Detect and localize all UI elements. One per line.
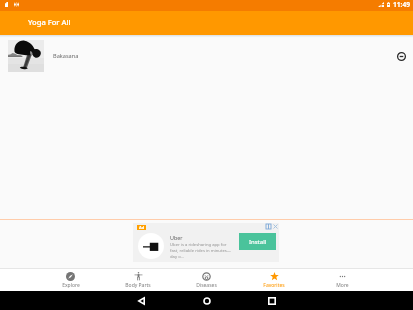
staticText: Favorites [263,282,285,289]
button[interactable]: Back [131,291,152,310]
staticText: Uber is a ridesharing app for fast, reli… [170,242,231,260]
button[interactable]: Remove from favourites [392,47,410,65]
button[interactable]: Home [196,291,217,310]
button[interactable]: Favorites [240,269,308,291]
staticText: Yoga For All [28,17,71,27]
staticText: Uber [170,234,183,241]
staticText: 11:49 [393,0,410,9]
button[interactable]: Install [239,233,276,250]
button[interactable]: Recent apps [261,291,282,310]
staticText: Explore [62,282,80,289]
staticText: More [336,282,349,289]
other: Close ad [273,224,278,229]
button[interactable]: Explore [37,269,104,291]
button[interactable]: More [308,269,376,291]
button[interactable]: Bakasana [0,38,413,74]
button[interactable]: Body Parts [104,269,172,291]
staticText: Install [249,238,267,246]
staticText: Body Parts [125,282,151,289]
staticText: Ad [139,225,145,230]
button[interactable]: Ad [133,223,279,262]
other: Ad information [266,224,271,229]
staticText: Diseases [196,282,217,289]
button[interactable]: Diseases [172,269,240,291]
staticText: Bakasana [53,52,79,60]
